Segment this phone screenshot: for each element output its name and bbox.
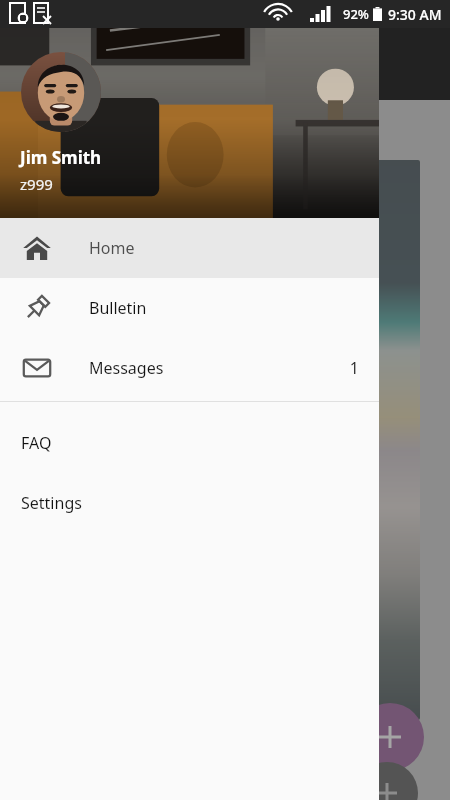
button[interactable]: Bulletin [0, 278, 379, 338]
staticText: 92% [343, 5, 369, 23]
staticText: Jim Smith [20, 146, 102, 169]
staticText: 9:30 AM [388, 5, 442, 24]
button[interactable]: Messages [0, 338, 379, 398]
button[interactable]: Add [356, 703, 424, 771]
staticText: Home [89, 237, 135, 259]
staticText: Messages [89, 357, 164, 379]
button[interactable]: Settings [0, 462, 379, 522]
staticText: z999 [20, 174, 53, 194]
staticText: 1 [349, 357, 359, 379]
button[interactable]: Add item [356, 762, 418, 800]
button[interactable]: FAQ [0, 402, 379, 462]
button[interactable]: Home [0, 218, 379, 278]
staticText: FAQ [21, 432, 52, 454]
staticText: Settings [21, 492, 82, 514]
staticText: Bulletin [89, 297, 147, 319]
